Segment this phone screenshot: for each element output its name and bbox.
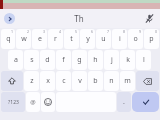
button[interactable]: Expand suggestions: [4, 13, 15, 24]
button[interactable]: Backspace: [136, 71, 159, 91]
staticText: 5: [75, 29, 78, 34]
staticText: .: [123, 97, 125, 107]
button[interactable]: w: [16, 29, 31, 49]
staticText: z: [30, 76, 34, 86]
staticText: o: [133, 34, 138, 44]
staticText: a: [14, 55, 18, 65]
staticText: m: [124, 76, 131, 86]
staticText: u: [101, 34, 106, 44]
button[interactable]: p: [144, 29, 159, 49]
button[interactable]: d: [40, 50, 55, 70]
button[interactable]: .: [117, 92, 131, 112]
staticText: q: [6, 34, 11, 44]
button[interactable]: e: [32, 29, 47, 49]
staticText: 6: [91, 29, 94, 34]
staticText: x: [46, 76, 50, 86]
button[interactable]: l: [136, 50, 151, 70]
staticText: 1: [11, 29, 14, 34]
staticText: 9: [139, 29, 142, 34]
button[interactable]: n: [104, 71, 119, 91]
button[interactable]: v: [72, 71, 87, 91]
button[interactable]: z: [24, 71, 39, 91]
button[interactable]: Enter: [132, 92, 159, 112]
button[interactable]: m: [120, 71, 135, 91]
button[interactable]: t: [64, 29, 79, 49]
staticText: 2: [27, 29, 30, 34]
staticText: j: [111, 55, 113, 65]
staticText: t: [70, 34, 73, 44]
staticText: c: [62, 76, 66, 86]
staticText: ?123: [8, 99, 19, 106]
staticText: l: [143, 55, 145, 65]
staticText: y: [86, 34, 90, 44]
button[interactable]: Emoji: [41, 92, 55, 112]
staticText: i: [119, 34, 121, 44]
button[interactable]: a: [8, 50, 23, 70]
button[interactable]: r: [48, 29, 63, 49]
staticText: n: [109, 76, 114, 86]
button[interactable]: f: [56, 50, 71, 70]
staticText: g: [77, 55, 82, 65]
staticText: h: [93, 55, 98, 65]
staticText: w: [21, 34, 27, 44]
button[interactable]: s: [24, 50, 39, 70]
staticText: k: [126, 55, 130, 65]
staticText: b: [93, 76, 98, 86]
button[interactable]: c: [56, 71, 71, 91]
button[interactable]: Shift: [1, 71, 23, 91]
button[interactable]: i: [112, 29, 127, 49]
staticText: Th: [74, 13, 84, 24]
button[interactable]: Voice input off: [143, 12, 156, 25]
staticText: 3: [43, 29, 46, 34]
staticText: r: [54, 34, 57, 44]
staticText: 4: [59, 29, 62, 34]
staticText: d: [45, 55, 50, 65]
staticText: 7: [107, 29, 110, 34]
staticText: p: [149, 34, 154, 44]
button[interactable]: o: [128, 29, 143, 49]
staticText: 0: [155, 29, 158, 34]
staticText: s: [30, 55, 34, 65]
button[interactable]: y: [80, 29, 95, 49]
button[interactable]: u: [96, 29, 111, 49]
staticText: f: [62, 55, 65, 65]
button[interactable]: b: [88, 71, 103, 91]
staticText: e: [38, 34, 42, 44]
staticText: v: [78, 76, 82, 86]
button[interactable]: ?123: [1, 92, 25, 112]
button[interactable]: x: [40, 71, 55, 91]
staticText: @: [30, 98, 36, 106]
button[interactable]: @: [26, 92, 40, 112]
staticText: 8: [123, 29, 126, 34]
button[interactable]: j: [104, 50, 119, 70]
button[interactable]: k: [120, 50, 135, 70]
button[interactable]: h: [88, 50, 103, 70]
button[interactable]: q: [1, 29, 15, 49]
button[interactable]: g: [72, 50, 87, 70]
